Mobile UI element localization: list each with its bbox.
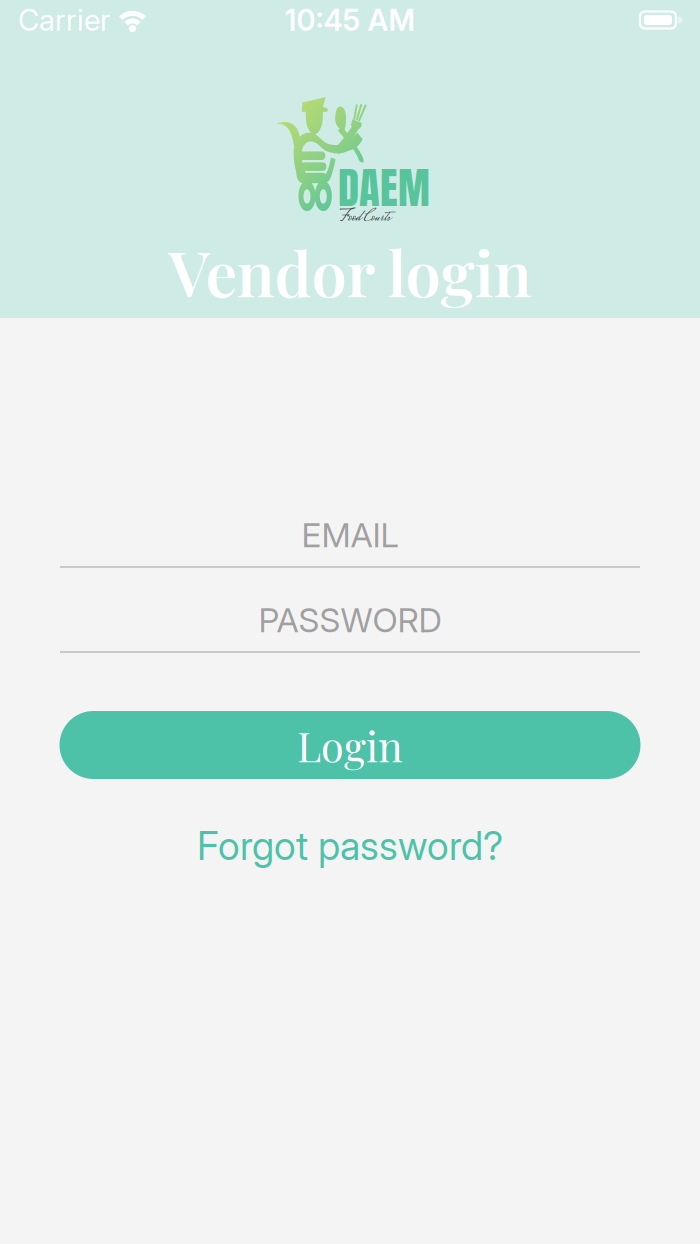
staticText: EMAIL (301, 515, 398, 555)
staticText: DAEM (338, 156, 430, 220)
staticText: Food Courts (340, 205, 390, 231)
staticText: Login (297, 717, 403, 773)
staticText: Vendor login (168, 229, 531, 313)
staticText: Carrier (18, 2, 110, 38)
staticText: PASSWORD (258, 600, 441, 640)
button[interactable]: Forgot password? (140, 818, 560, 874)
staticText: Forgot password? (197, 823, 503, 869)
button[interactable]: Login (59, 711, 640, 779)
staticText: 10:45 AM (284, 2, 415, 38)
